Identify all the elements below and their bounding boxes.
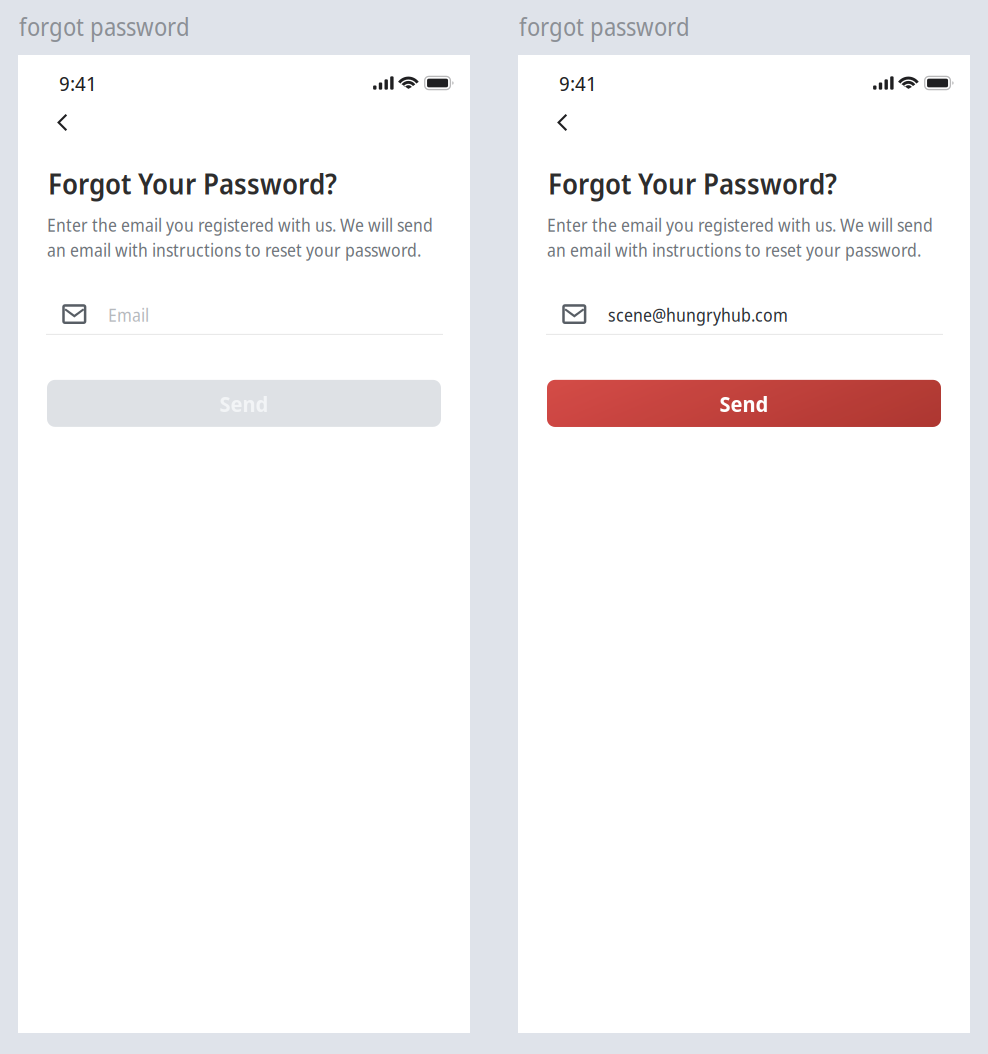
staticText: 9:41	[559, 69, 597, 97]
staticText: Email	[108, 303, 149, 327]
staticText: Send	[719, 388, 768, 418]
staticText: forgot password	[19, 10, 190, 43]
button[interactable]: Back	[18, 100, 85, 137]
staticText: an email with instructions to reset your…	[547, 238, 921, 262]
button[interactable]: Send	[547, 380, 941, 427]
staticText: Forgot Your Password?	[48, 164, 337, 203]
button[interactable]: Email	[18, 301, 470, 335]
staticText: forgot password	[519, 10, 690, 43]
staticText: an email with instructions to reset your…	[47, 238, 421, 262]
button[interactable]: Send	[47, 380, 441, 427]
button[interactable]: Email	[518, 301, 970, 335]
staticText: Enter the email you registered with us. …	[547, 213, 933, 237]
button[interactable]: Back	[518, 100, 585, 137]
staticText: 9:41	[59, 69, 97, 97]
staticText: Enter the email you registered with us. …	[47, 213, 433, 237]
staticText: Send	[219, 388, 268, 418]
staticText: Forgot Your Password?	[548, 164, 837, 203]
staticText: scene@hungryhub.com	[608, 303, 788, 327]
